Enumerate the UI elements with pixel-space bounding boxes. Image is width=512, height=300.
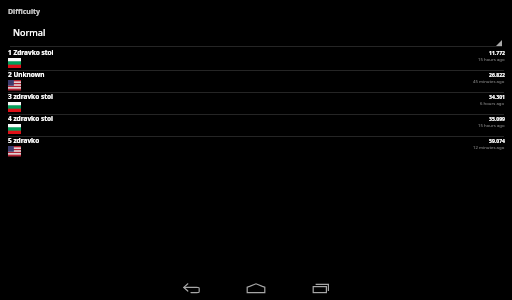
staticText: 15 hours ago bbox=[478, 122, 505, 128]
button[interactable]: Recent apps bbox=[298, 273, 346, 300]
staticText: 2 Unknown bbox=[8, 70, 45, 79]
button[interactable]: Home bbox=[232, 273, 280, 300]
button[interactable]: 4 zdravko stoi bbox=[0, 115, 512, 136]
button[interactable]: 5 zdravko bbox=[0, 137, 512, 158]
staticText: 1 Zdravko stoi bbox=[8, 48, 54, 57]
staticText: 26.822 bbox=[489, 72, 505, 79]
staticText: 35.099 bbox=[489, 116, 505, 123]
staticText: Difficulty bbox=[8, 7, 40, 17]
staticText: 59.074 bbox=[489, 138, 505, 145]
staticText: 6 hours ago bbox=[480, 100, 505, 106]
staticText: 4 zdravko stoi bbox=[8, 114, 53, 123]
staticText: 5 zdravko bbox=[8, 136, 40, 145]
button[interactable]: 3 zdravko stoi bbox=[0, 93, 512, 114]
staticText: 11.772 bbox=[489, 50, 505, 57]
staticText: 15 hours ago bbox=[478, 56, 505, 62]
button[interactable]: Difficulty bbox=[0, 0, 512, 47]
button[interactable]: 1 Zdravko stoi bbox=[0, 49, 512, 70]
staticText: 12 minutes ago bbox=[473, 144, 505, 150]
button[interactable]: 2 Unknown bbox=[0, 71, 512, 92]
staticText: 3 zdravko stoi bbox=[8, 92, 53, 101]
staticText: 34.301 bbox=[489, 94, 505, 101]
staticText: 45 minutes ago bbox=[473, 78, 505, 84]
button[interactable]: Back bbox=[168, 273, 216, 300]
staticText: Normal bbox=[13, 26, 46, 38]
